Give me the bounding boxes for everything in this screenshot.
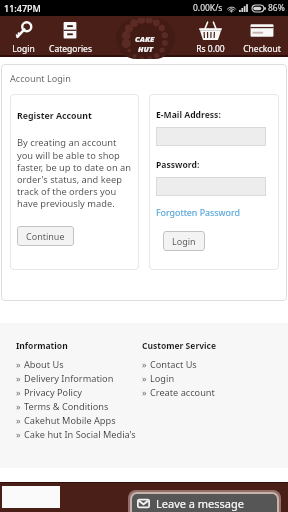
staticText: »	[16, 358, 21, 370]
button[interactable]	[156, 177, 266, 196]
button[interactable]: Leave a message	[132, 494, 277, 512]
staticText: Leave a message	[156, 496, 244, 511]
staticText: »	[16, 400, 21, 412]
staticText: Cakehut Mobile Apps	[24, 414, 116, 427]
staticText: Terms & Conditions	[24, 400, 109, 413]
button[interactable]: Login	[1, 16, 46, 55]
button[interactable]: Cake Hut home	[116, 18, 175, 59]
button[interactable]: Rs 0.00	[185, 16, 235, 55]
staticText: Continue	[26, 230, 65, 242]
button[interactable]	[156, 127, 266, 146]
staticText: »	[142, 358, 147, 370]
button[interactable]: »	[142, 357, 282, 371]
staticText: Login	[150, 372, 175, 385]
button[interactable]: »	[142, 371, 282, 385]
staticText: HUT	[138, 44, 153, 54]
button[interactable]: Forgotten Password	[156, 206, 240, 218]
staticText: Rs 0.00	[196, 43, 225, 55]
button[interactable]: »	[16, 399, 142, 413]
button[interactable]: »	[16, 371, 142, 385]
staticText: Password:	[156, 159, 200, 171]
staticText: 86%	[268, 2, 285, 14]
button[interactable]: Categories	[46, 16, 94, 55]
staticText: CAKE	[135, 34, 155, 44]
staticText: Privacy Policy	[24, 386, 82, 399]
button[interactable]: »	[16, 413, 142, 427]
staticText: 0.00K/s	[193, 2, 223, 14]
staticText: »	[142, 386, 147, 398]
staticText: »	[142, 372, 147, 384]
staticText: Cake hut In Social Media's	[24, 428, 136, 441]
button[interactable]: Checkout	[236, 16, 288, 55]
staticText: E-Mail Address:	[156, 109, 221, 121]
button[interactable]: Login	[163, 231, 205, 251]
staticText: Contact Us	[150, 358, 197, 371]
staticText: About Us	[24, 358, 64, 371]
staticText: »	[16, 414, 21, 426]
staticText: Register Account	[17, 110, 92, 122]
button[interactable]: Continue	[17, 226, 74, 246]
staticText: »	[16, 428, 21, 440]
staticText: Checkout	[243, 43, 281, 55]
staticText: »	[16, 386, 21, 398]
staticText: Delivery Information	[24, 372, 114, 385]
staticText: Account Login	[10, 72, 71, 84]
staticText: Categories	[49, 43, 92, 55]
button[interactable]: »	[142, 385, 282, 399]
staticText: Customer Service	[142, 340, 217, 352]
button[interactable]: »	[16, 427, 142, 441]
staticText: Login	[172, 235, 196, 247]
staticText: Create account	[150, 386, 215, 399]
button[interactable]: »	[16, 357, 142, 371]
staticText: »	[16, 372, 21, 384]
staticText: 11:47PM	[4, 2, 41, 14]
staticText: Information	[16, 340, 68, 352]
staticText: By creating an account you will be able …	[17, 136, 134, 209]
button[interactable]: »	[16, 385, 142, 399]
staticText: Forgotten Password	[156, 206, 240, 218]
staticText: Login	[12, 43, 35, 55]
